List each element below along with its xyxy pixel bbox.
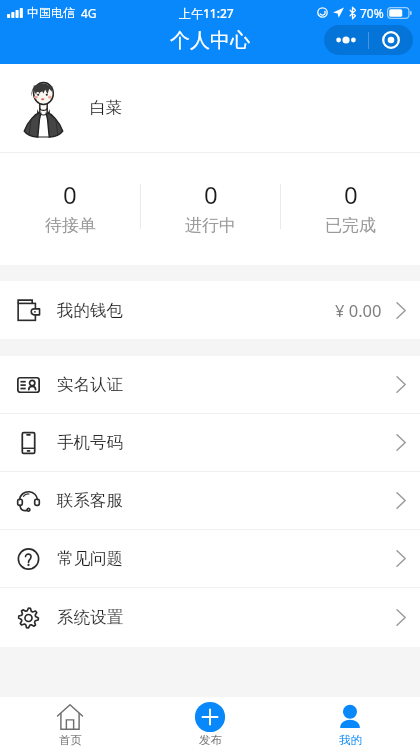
- staticText: 上午11:27: [179, 5, 234, 21]
- staticText: 系统设置: [57, 607, 123, 628]
- staticText: 中国电信: [27, 5, 75, 20]
- staticText: 发布: [199, 733, 222, 747]
- staticText: 已完成: [325, 215, 376, 236]
- button[interactable]: 常见问题: [0, 530, 420, 587]
- staticText: 白菜: [90, 98, 122, 118]
- staticText: 首页: [59, 733, 82, 747]
- staticText: 待接单: [45, 215, 96, 236]
- button[interactable]: 白菜: [0, 64, 420, 152]
- button[interactable]: 首页: [0, 704, 140, 747]
- button[interactable]: 联系客服: [0, 472, 420, 529]
- staticText: 0: [63, 178, 77, 211]
- button[interactable]: 我的钱包: [0, 281, 420, 339]
- staticText: 我的: [339, 733, 362, 747]
- staticText: 70%: [360, 5, 384, 21]
- button[interactable]: 0: [281, 153, 420, 260]
- button[interactable]: 0: [141, 153, 280, 260]
- staticText: 手机号码: [57, 432, 123, 453]
- staticText: 联系客服: [57, 490, 123, 511]
- staticText: ¥ 0.00: [335, 299, 382, 321]
- staticText: 进行中: [185, 215, 236, 236]
- button[interactable]: 实名认证: [0, 356, 420, 413]
- button[interactable]: 发布: [140, 704, 280, 747]
- staticText: 4G: [81, 5, 97, 21]
- staticText: 0: [344, 178, 358, 211]
- staticText: 实名认证: [57, 374, 123, 395]
- button[interactable]: 手机号码: [0, 414, 420, 471]
- button[interactable]: 我的: [280, 704, 420, 747]
- staticText: 常见问题: [57, 548, 123, 569]
- button[interactable]: 0: [0, 153, 140, 260]
- staticText: 个人中心: [170, 28, 250, 53]
- button[interactable]: More options: [324, 25, 413, 55]
- button[interactable]: 系统设置: [0, 588, 420, 647]
- staticText: 我的钱包: [57, 300, 123, 321]
- staticText: 0: [204, 178, 218, 211]
